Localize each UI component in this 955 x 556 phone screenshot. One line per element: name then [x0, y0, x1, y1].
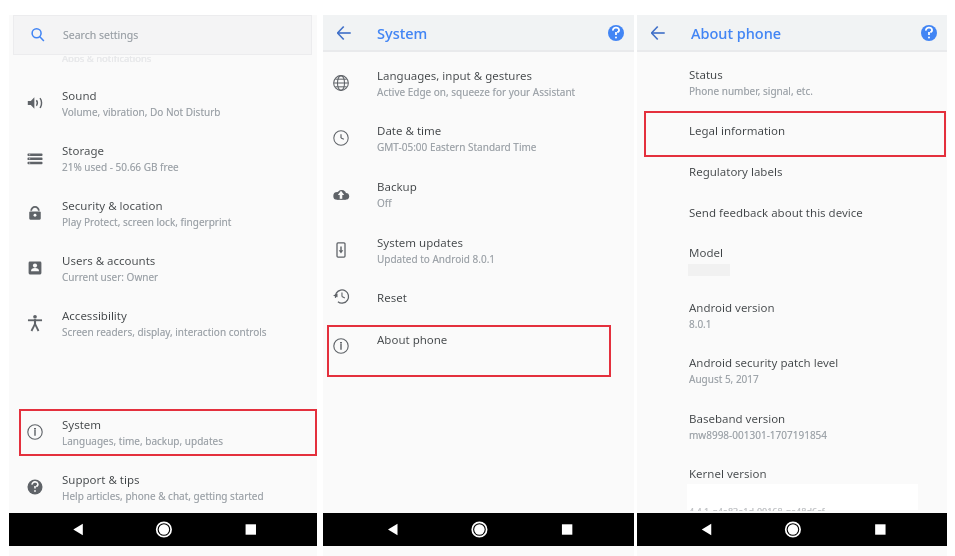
staticText: Support & tips — [62, 472, 140, 488]
button[interactable]: Legal information — [637, 110, 947, 151]
button[interactable]: Security & location — [9, 186, 317, 241]
staticText: Android version — [689, 300, 775, 316]
button[interactable]: Recent apps — [545, 513, 589, 546]
button[interactable]: Android version — [637, 293, 947, 337]
staticText: Active Edge on, squeeze for your Assista… — [377, 85, 576, 99]
staticText: GMT-05:00 Eastern Standard Time — [377, 140, 537, 154]
staticText: Sound — [62, 88, 97, 104]
staticText: Send feedback about this device — [689, 205, 863, 221]
staticText: Baseband version — [689, 411, 786, 427]
staticText: mw8998-001301-1707191854 — [689, 428, 828, 442]
staticText: System — [377, 23, 428, 43]
staticText: Model — [689, 245, 723, 261]
staticText: Accessibility — [62, 308, 127, 324]
staticText: Apps & notifications — [62, 56, 152, 62]
staticText: Users & accounts — [62, 253, 156, 269]
staticText: Date & time — [377, 123, 442, 139]
button[interactable]: Recent apps — [229, 513, 273, 546]
button[interactable]: Back — [685, 513, 729, 546]
staticText: Volume, vibration, Do Not Disturb — [62, 105, 221, 119]
staticText: August 5, 2017 — [689, 372, 759, 386]
button[interactable]: Android security patch level — [637, 348, 947, 392]
button[interactable]: Back — [371, 513, 415, 546]
staticText: Off — [377, 196, 392, 210]
button[interactable]: Support & tips — [9, 463, 317, 511]
button[interactable]: Status — [637, 60, 947, 104]
button[interactable]: Accessibility — [9, 296, 317, 351]
staticText: System — [62, 417, 102, 433]
staticText: Help articles, phone & chat, getting sta… — [62, 489, 264, 503]
staticText: Screen readers, display, interaction con… — [62, 325, 267, 339]
button[interactable]: Back — [56, 513, 100, 546]
button[interactable]: Languages, input & gestures — [323, 56, 634, 111]
button[interactable]: About phone — [323, 326, 634, 353]
button[interactable]: Home — [771, 513, 815, 546]
button[interactable]: Help — [910, 15, 948, 50]
staticText: Storage — [62, 143, 104, 159]
staticText: Status — [689, 67, 723, 83]
staticText: Search settings — [63, 28, 139, 42]
staticText: Play Protect, screen lock, fingerprint — [62, 215, 232, 229]
button[interactable]: Sound — [9, 76, 317, 131]
staticText: Legal information — [689, 123, 786, 139]
staticText: About phone — [377, 332, 448, 348]
button[interactable]: System — [9, 409, 317, 455]
button[interactable]: Reset — [323, 276, 634, 318]
button[interactable]: Recent apps — [858, 513, 902, 546]
staticText: Regulatory labels — [689, 164, 783, 180]
staticText: Security & location — [62, 198, 163, 214]
staticText: Updated to Android 8.0.1 — [377, 252, 496, 266]
button[interactable]: Kernel version — [637, 453, 947, 494]
staticText: Languages, time, backup, updates — [62, 434, 223, 448]
staticText: Reset — [377, 290, 407, 306]
staticText: About phone — [691, 23, 782, 43]
button[interactable]: Model — [637, 232, 947, 273]
button[interactable]: Users & accounts — [9, 241, 317, 296]
button[interactable]: Help — [597, 15, 635, 50]
button[interactable]: Storage — [9, 131, 317, 186]
staticText: 21% used - 50.66 GB free — [62, 160, 179, 174]
button[interactable]: Backup — [323, 167, 634, 222]
staticText: Phone number, signal, etc. — [689, 84, 813, 98]
button[interactable]: Baseband version — [637, 404, 947, 448]
button[interactable]: Home — [457, 513, 501, 546]
staticText: System updates — [377, 235, 463, 251]
staticText: 8.0.1 — [689, 317, 712, 331]
staticText: Backup — [377, 179, 417, 195]
button[interactable]: Date & time — [323, 111, 634, 166]
button[interactable]: Send feedback about this device — [637, 192, 947, 233]
button[interactable]: Back — [636, 15, 680, 50]
staticText: Languages, input & gestures — [377, 68, 532, 84]
staticText: 4.4.1-g4e83e1d-00168-ga48d6cf — [689, 508, 825, 511]
staticText: Kernel version — [689, 466, 767, 482]
staticText: Current user: Owner — [62, 270, 159, 284]
staticText: Android security patch level — [689, 355, 839, 371]
button[interactable]: Back — [322, 15, 366, 50]
button[interactable]: Search settings — [13, 15, 312, 55]
button[interactable]: Home — [142, 513, 186, 546]
button[interactable]: Regulatory labels — [637, 151, 947, 192]
button[interactable]: System updates — [323, 223, 634, 278]
